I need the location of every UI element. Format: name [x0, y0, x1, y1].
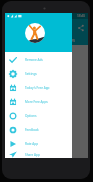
button[interactable]: Options [5, 109, 72, 123]
staticText: APPS [22, 39, 30, 43]
button[interactable]: FREE APPS [46, 36, 88, 45]
button[interactable]: Today's Free App [5, 81, 72, 95]
staticText: More Free Apps [25, 100, 48, 104]
staticText: Share App [25, 153, 40, 157]
button[interactable]: Remove Ads [5, 53, 72, 67]
button[interactable]: Feedback [5, 123, 72, 137]
staticText: Feedback [25, 128, 39, 132]
button[interactable]: Rate App [5, 137, 72, 151]
staticText: FREE APPS [60, 39, 75, 43]
staticText: Options [25, 114, 37, 118]
staticText: Settings [25, 72, 37, 76]
button[interactable]: APPS [5, 36, 46, 45]
staticText: Rate App [25, 142, 39, 146]
staticText: Today's Free App [25, 86, 50, 90]
staticText: 18:45 [77, 14, 86, 18]
button[interactable]: Share [77, 24, 85, 32]
staticText: Remove Ads [25, 58, 43, 62]
button[interactable]: Settings [5, 67, 72, 81]
button[interactable]: Share App [5, 151, 72, 158]
button[interactable]: More Free Apps [5, 95, 72, 109]
